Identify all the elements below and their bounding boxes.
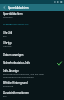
staticText: Uhr-Stil bbox=[3, 31, 13, 35]
staticText: Benutzerinformationen, die auf dem Sperr… bbox=[3, 72, 62, 78]
staticText: Wischen bbox=[3, 15, 13, 18]
staticText: Einfarbig bbox=[3, 84, 14, 87]
button[interactable]: Uhrtyp bbox=[0, 41, 64, 50]
button[interactable]: Info-Anzeige bbox=[0, 69, 64, 80]
staticText: Sicherheitsstatus-Info bbox=[3, 61, 31, 65]
staticText: Datum anzeigen bbox=[3, 53, 24, 57]
button[interactable]: Sicherheitsstatus-Info bbox=[0, 61, 64, 67]
staticText: Effekte Hintergrund bbox=[3, 81, 28, 85]
staticText: Uhrtyp bbox=[3, 41, 12, 45]
staticText: Sperrbildschirm bbox=[8, 6, 29, 10]
button[interactable]: Zusatzinformationen bbox=[0, 91, 64, 100]
staticText: Sperrbildschirm bbox=[3, 12, 23, 16]
button[interactable]: Effekte Hintergrund bbox=[0, 81, 64, 90]
staticText: SPERRBILDSCHIRM-TYP bbox=[3, 23, 29, 26]
button[interactable]: Datum anzeigen bbox=[0, 53, 64, 59]
staticText: Zusatzinformationen bbox=[3, 91, 29, 95]
staticText: Ein bbox=[3, 34, 7, 37]
button[interactable]: Uhr-Stil bbox=[0, 31, 64, 40]
staticText: Ein bbox=[3, 94, 7, 97]
button[interactable]: Sperrbildschirm bbox=[0, 12, 64, 21]
button[interactable]: Back bbox=[0, 4, 8, 11]
staticText: Normal bbox=[3, 44, 12, 47]
staticText: Info-Anzeige bbox=[3, 69, 19, 73]
